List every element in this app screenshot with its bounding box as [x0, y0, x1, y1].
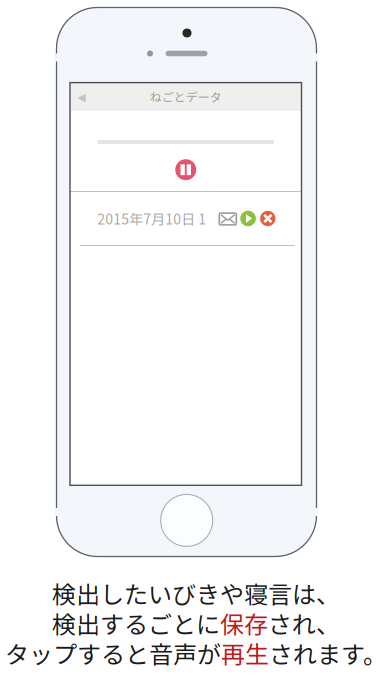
staticText: されます。 [269, 636, 387, 670]
staticText: ねごとデータ [150, 88, 222, 105]
staticText: 保存 [220, 606, 268, 640]
button[interactable]: Pause [172, 156, 200, 184]
staticText: タップすると音声が [5, 636, 221, 670]
button[interactable]: 2015年7月10日 1 [70, 192, 301, 245]
button[interactable]: Back [70, 83, 93, 111]
staticText: 2015年7月10日 1 [97, 208, 206, 229]
staticText: され、 [268, 606, 340, 640]
staticText: 再生 [221, 636, 269, 670]
staticText: 検出するごとに [52, 606, 220, 640]
staticText: 検出したいびきや寝言は、 [52, 576, 340, 610]
